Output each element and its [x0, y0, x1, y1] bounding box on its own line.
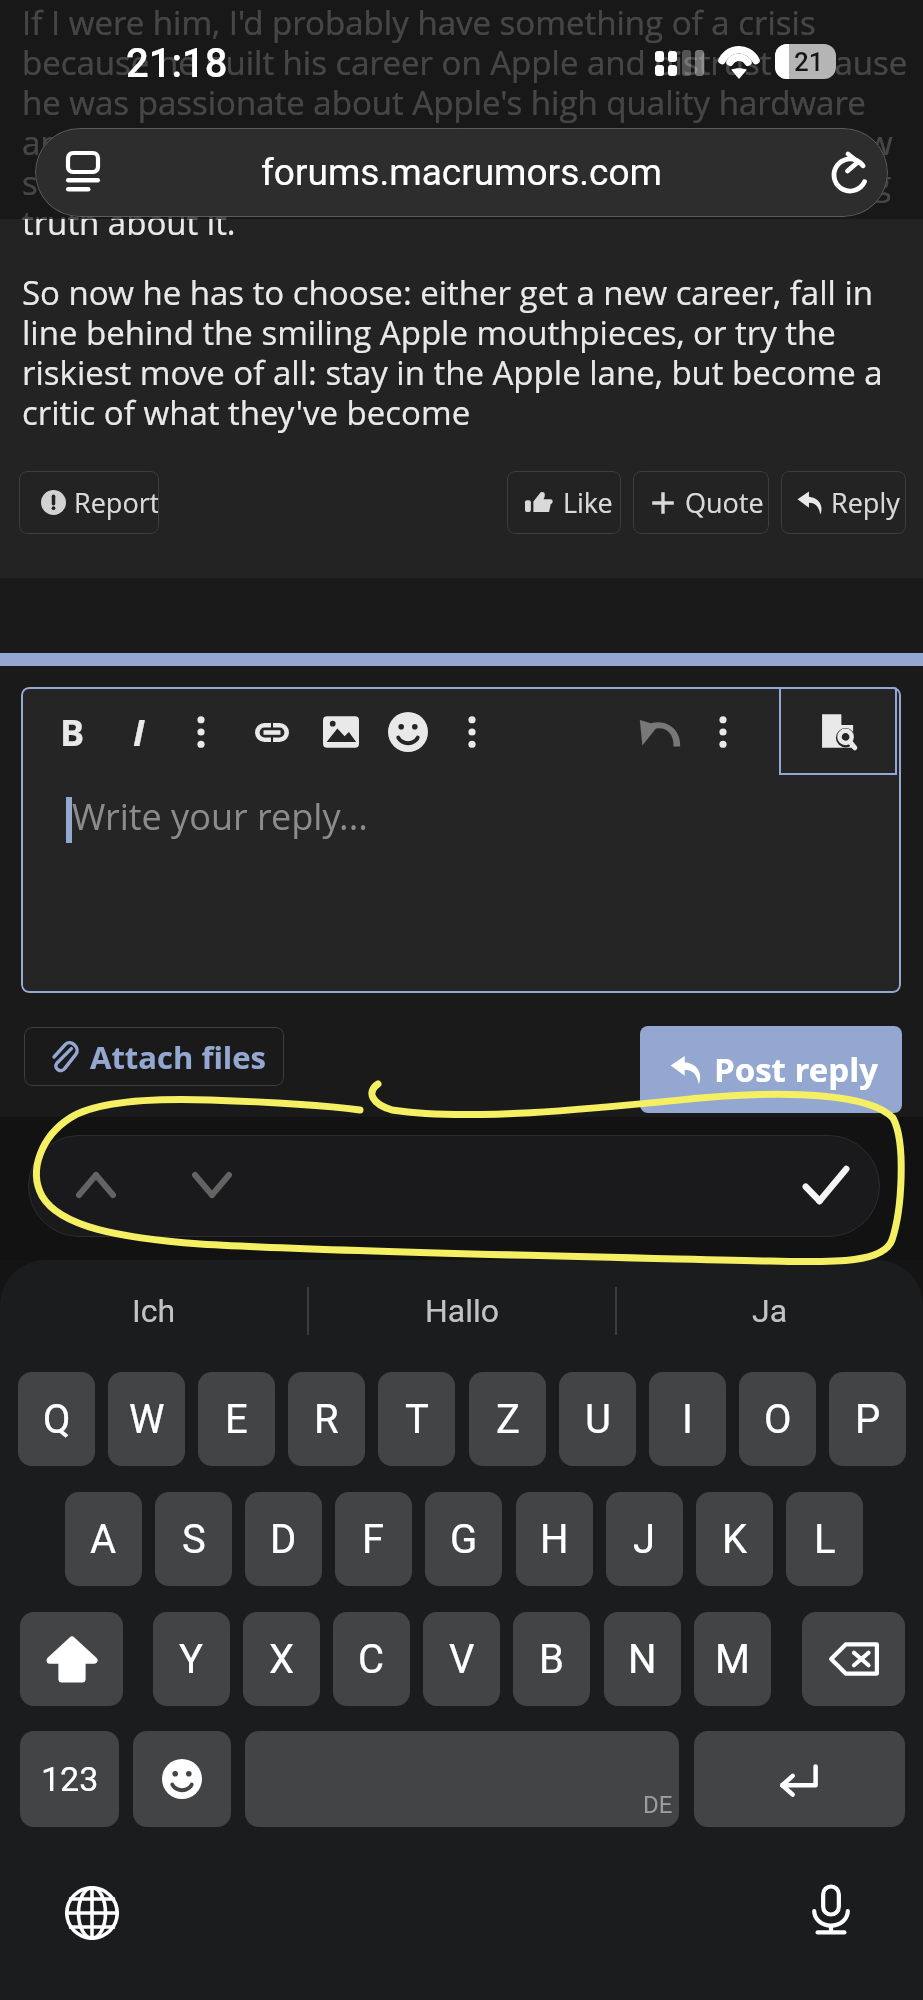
button[interactable] — [450, 688, 494, 776]
staticText: W — [129, 1396, 165, 1443]
button[interactable]: Y — [153, 1612, 230, 1706]
staticText: and software, and trusted them to keep d… — [22, 120, 893, 165]
button[interactable]: Reader mode — [57, 145, 109, 197]
button[interactable]: U — [559, 1372, 636, 1466]
staticText: Report — [74, 484, 159, 521]
button[interactable]: E — [198, 1372, 275, 1466]
button[interactable]: Reload page — [824, 147, 876, 199]
staticText: Post reply — [714, 1047, 879, 1092]
staticText: V — [449, 1636, 475, 1683]
staticText: 21 — [794, 47, 824, 77]
button[interactable]: Change keyboard language — [62, 1883, 122, 1943]
staticText: N — [628, 1636, 657, 1683]
button[interactable]: Enter — [694, 1731, 905, 1827]
button[interactable]: 123 — [20, 1731, 119, 1827]
staticText: Z — [496, 1396, 520, 1443]
button[interactable]: J — [606, 1492, 683, 1586]
button[interactable]: Reply — [781, 471, 906, 534]
button[interactable]: A — [65, 1492, 142, 1586]
staticText: riskiest move of all: stay in the Apple … — [22, 350, 883, 395]
button[interactable]: Reader mode — [35, 128, 888, 217]
staticText: T — [405, 1396, 429, 1443]
button[interactable]: B — [513, 1612, 590, 1706]
staticText: truth about it. — [22, 200, 236, 245]
staticText: Ich — [132, 1292, 176, 1330]
button[interactable]: Shift — [20, 1612, 123, 1706]
button[interactable]: Hallo — [309, 1272, 615, 1350]
button[interactable]: D — [245, 1492, 322, 1586]
button[interactable]: Q — [18, 1372, 95, 1466]
button[interactable]: G — [425, 1492, 502, 1586]
staticText: E — [225, 1396, 248, 1443]
button[interactable]: Ja — [617, 1272, 923, 1350]
button[interactable]: I — [649, 1372, 726, 1466]
staticText: C — [358, 1636, 385, 1683]
button[interactable]: Voice input — [801, 1880, 861, 1940]
staticText: something has changed and he's calling t… — [22, 160, 892, 205]
staticText: S — [182, 1516, 206, 1563]
staticText: he was passionate about Apple's high qua… — [22, 80, 866, 125]
staticText: X — [269, 1636, 295, 1683]
button[interactable] — [638, 688, 682, 776]
staticText: J — [633, 1516, 656, 1563]
staticText: Reply — [831, 484, 900, 521]
button[interactable]: Preview — [779, 687, 897, 775]
staticText: B — [539, 1636, 564, 1683]
button[interactable] — [179, 688, 223, 776]
button[interactable]: Previous field — [67, 1156, 125, 1214]
button[interactable]: Backspace — [802, 1612, 905, 1706]
staticText: Q — [43, 1396, 71, 1443]
button[interactable]: V — [423, 1612, 500, 1706]
staticText: I — [133, 708, 145, 757]
button[interactable]: M — [694, 1612, 771, 1706]
button[interactable]: K — [696, 1492, 773, 1586]
staticText: I — [682, 1396, 693, 1443]
button[interactable]: Quote — [633, 471, 769, 534]
staticText: 21:18 — [126, 40, 228, 87]
staticText: Write your reply... — [72, 792, 368, 841]
button[interactable]: W — [108, 1372, 185, 1466]
staticText: line behind the smiling Apple mouthpiece… — [22, 310, 836, 355]
button[interactable]: Attach files — [24, 1027, 284, 1086]
staticText: G — [450, 1516, 478, 1563]
button[interactable]: Report — [19, 471, 159, 534]
button[interactable]: L — [786, 1492, 863, 1586]
button[interactable]: X — [243, 1612, 320, 1706]
button[interactable]: C — [333, 1612, 410, 1706]
button[interactable]: N — [604, 1612, 681, 1706]
staticText: 123 — [41, 1759, 99, 1799]
staticText: B — [60, 708, 85, 757]
staticText: Hallo — [425, 1292, 500, 1330]
staticText: K — [722, 1516, 748, 1563]
staticText: DE — [643, 1791, 673, 1819]
button[interactable]: S — [155, 1492, 232, 1586]
button[interactable]: Z — [469, 1372, 546, 1466]
button[interactable] — [319, 688, 363, 776]
staticText: If I were him, I'd probably have somethi… — [22, 0, 816, 45]
staticText: R — [314, 1396, 339, 1443]
button[interactable]: R — [288, 1372, 365, 1466]
staticText: H — [540, 1516, 569, 1563]
button[interactable]: O — [739, 1372, 816, 1466]
button[interactable]: H — [516, 1492, 593, 1586]
button[interactable] — [250, 688, 294, 776]
staticText: Like — [563, 484, 613, 521]
button[interactable]: Ich — [0, 1272, 307, 1350]
staticText: because he built his career on Apple and… — [22, 40, 908, 85]
button[interactable]: T — [378, 1372, 455, 1466]
button[interactable]: Like — [507, 471, 621, 534]
button[interactable]: I — [117, 688, 161, 776]
button[interactable] — [701, 688, 745, 776]
button[interactable]: F — [335, 1492, 412, 1586]
button[interactable]: Emoji — [133, 1731, 231, 1827]
staticText: D — [270, 1516, 297, 1563]
button[interactable]: Next field — [183, 1156, 241, 1214]
button[interactable]: P — [829, 1372, 906, 1466]
button[interactable] — [386, 688, 430, 776]
button[interactable]: Post reply — [640, 1026, 902, 1113]
button[interactable]: B — [50, 688, 94, 776]
staticText: L — [814, 1516, 836, 1563]
staticText: P — [855, 1396, 881, 1443]
button[interactable]: Space — [245, 1731, 679, 1827]
button[interactable]: Done — [797, 1156, 855, 1214]
